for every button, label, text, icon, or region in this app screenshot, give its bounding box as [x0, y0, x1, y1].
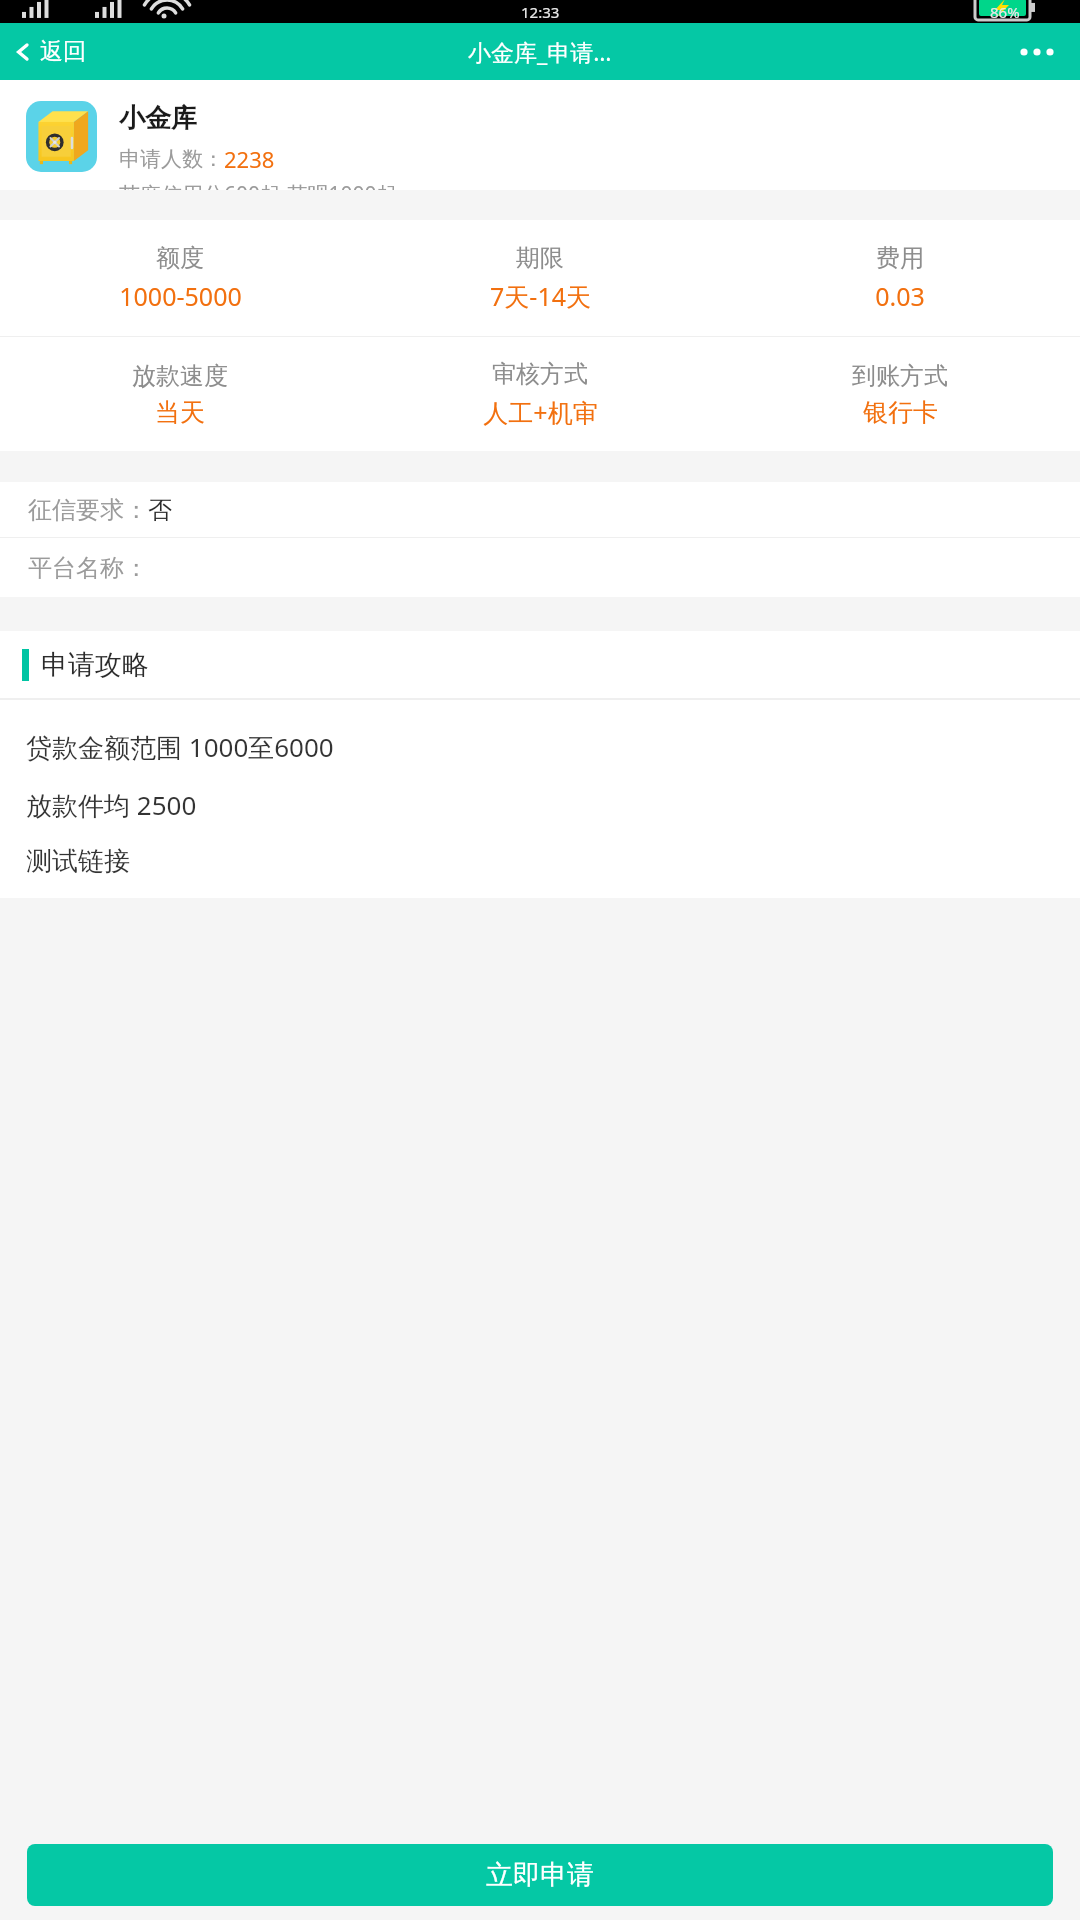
staticText: 立即申请: [486, 1858, 594, 1892]
staticText: 12:33: [521, 2, 560, 22]
button[interactable]: 期限: [360, 243, 720, 313]
staticText: 当天: [155, 397, 205, 428]
staticText: 平台名称：: [28, 553, 148, 583]
staticText: 额度: [156, 243, 204, 273]
button[interactable]: 额度: [0, 243, 360, 313]
staticText: 期限: [516, 243, 564, 273]
button[interactable]: 放款速度: [0, 361, 360, 428]
staticText: 小金库_申请…: [468, 36, 612, 67]
button[interactable]: 审核方式: [360, 359, 720, 429]
button[interactable]: 测试链接: [26, 845, 130, 878]
button[interactable]: 征信要求：: [0, 482, 1080, 537]
staticText: 审核方式: [492, 359, 588, 389]
staticText: 1000-5000: [119, 279, 242, 313]
staticText: 征信要求：: [28, 495, 148, 525]
staticText: 86%: [990, 2, 1020, 22]
staticText: 2238: [224, 144, 275, 174]
staticText: 7天-14天: [490, 279, 591, 313]
staticText: 小金库: [119, 102, 197, 135]
button[interactable]: 申请攻略: [0, 631, 1080, 698]
staticText: 费用: [876, 243, 924, 273]
staticText: 返回: [40, 37, 86, 66]
button[interactable]: 到账方式: [720, 361, 1080, 428]
button[interactable]: 平台名称：: [0, 538, 1080, 597]
staticText: 人工+机审: [483, 395, 598, 429]
staticText: 芝麻信用分600起 花呗1000起: [119, 180, 398, 190]
staticText: 申请攻略: [41, 648, 149, 682]
staticText: 贷款金额范围 1000至6000: [26, 729, 334, 765]
staticText: 申请人数：: [119, 146, 224, 172]
staticText: 到账方式: [852, 361, 948, 391]
button[interactable]: 返回: [6, 31, 92, 72]
staticText: 0.03: [875, 279, 925, 313]
button[interactable]: 立即申请: [27, 1844, 1053, 1906]
staticText: 放款速度: [132, 361, 228, 391]
button[interactable]: 费用: [720, 243, 1080, 313]
staticText: 银行卡: [863, 397, 938, 428]
staticText: 放款件均 2500: [26, 787, 197, 823]
staticText: 否: [148, 495, 172, 525]
button[interactable]: 小金库: [0, 80, 1080, 190]
button[interactable]: More options: [1014, 29, 1060, 75]
